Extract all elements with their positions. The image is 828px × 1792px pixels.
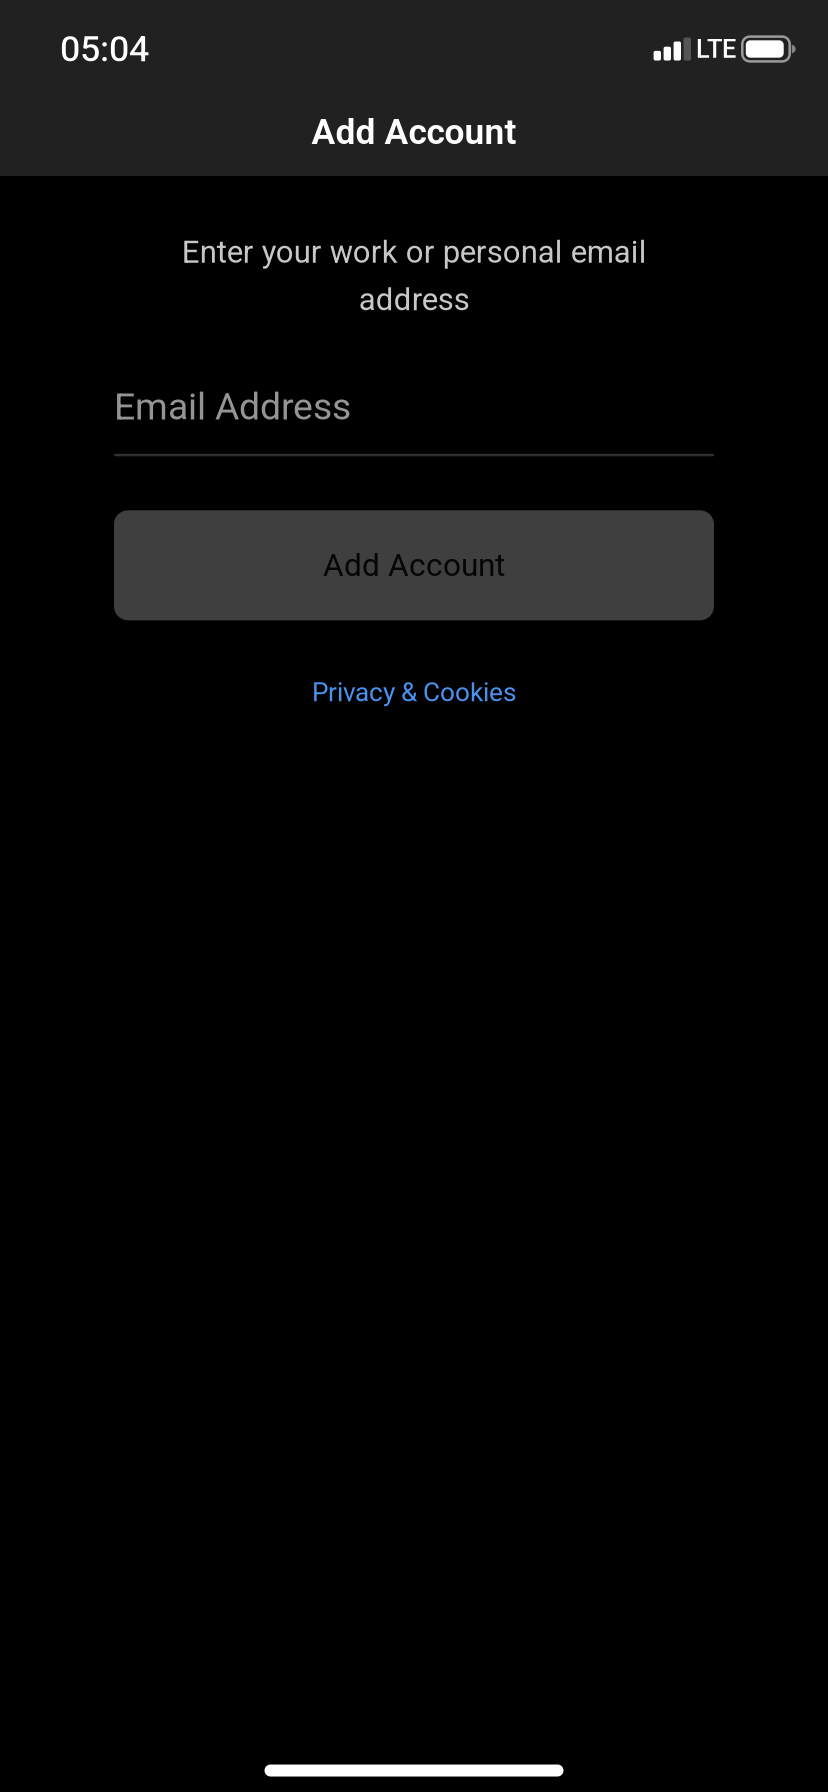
button[interactable]: Privacy & Cookies — [264, 668, 564, 716]
staticText: Email Address — [114, 385, 351, 429]
staticText: Enter your work or personal email addres… — [181, 234, 646, 318]
staticText: 05:04 — [60, 28, 149, 70]
staticText: Add Account — [323, 547, 505, 584]
staticText: Add Account — [311, 111, 516, 153]
staticText: LTE — [696, 34, 736, 64]
staticText: Privacy & Cookies — [312, 677, 516, 708]
button[interactable]: Add Account — [114, 510, 714, 620]
button[interactable]: Email Address — [114, 388, 714, 456]
